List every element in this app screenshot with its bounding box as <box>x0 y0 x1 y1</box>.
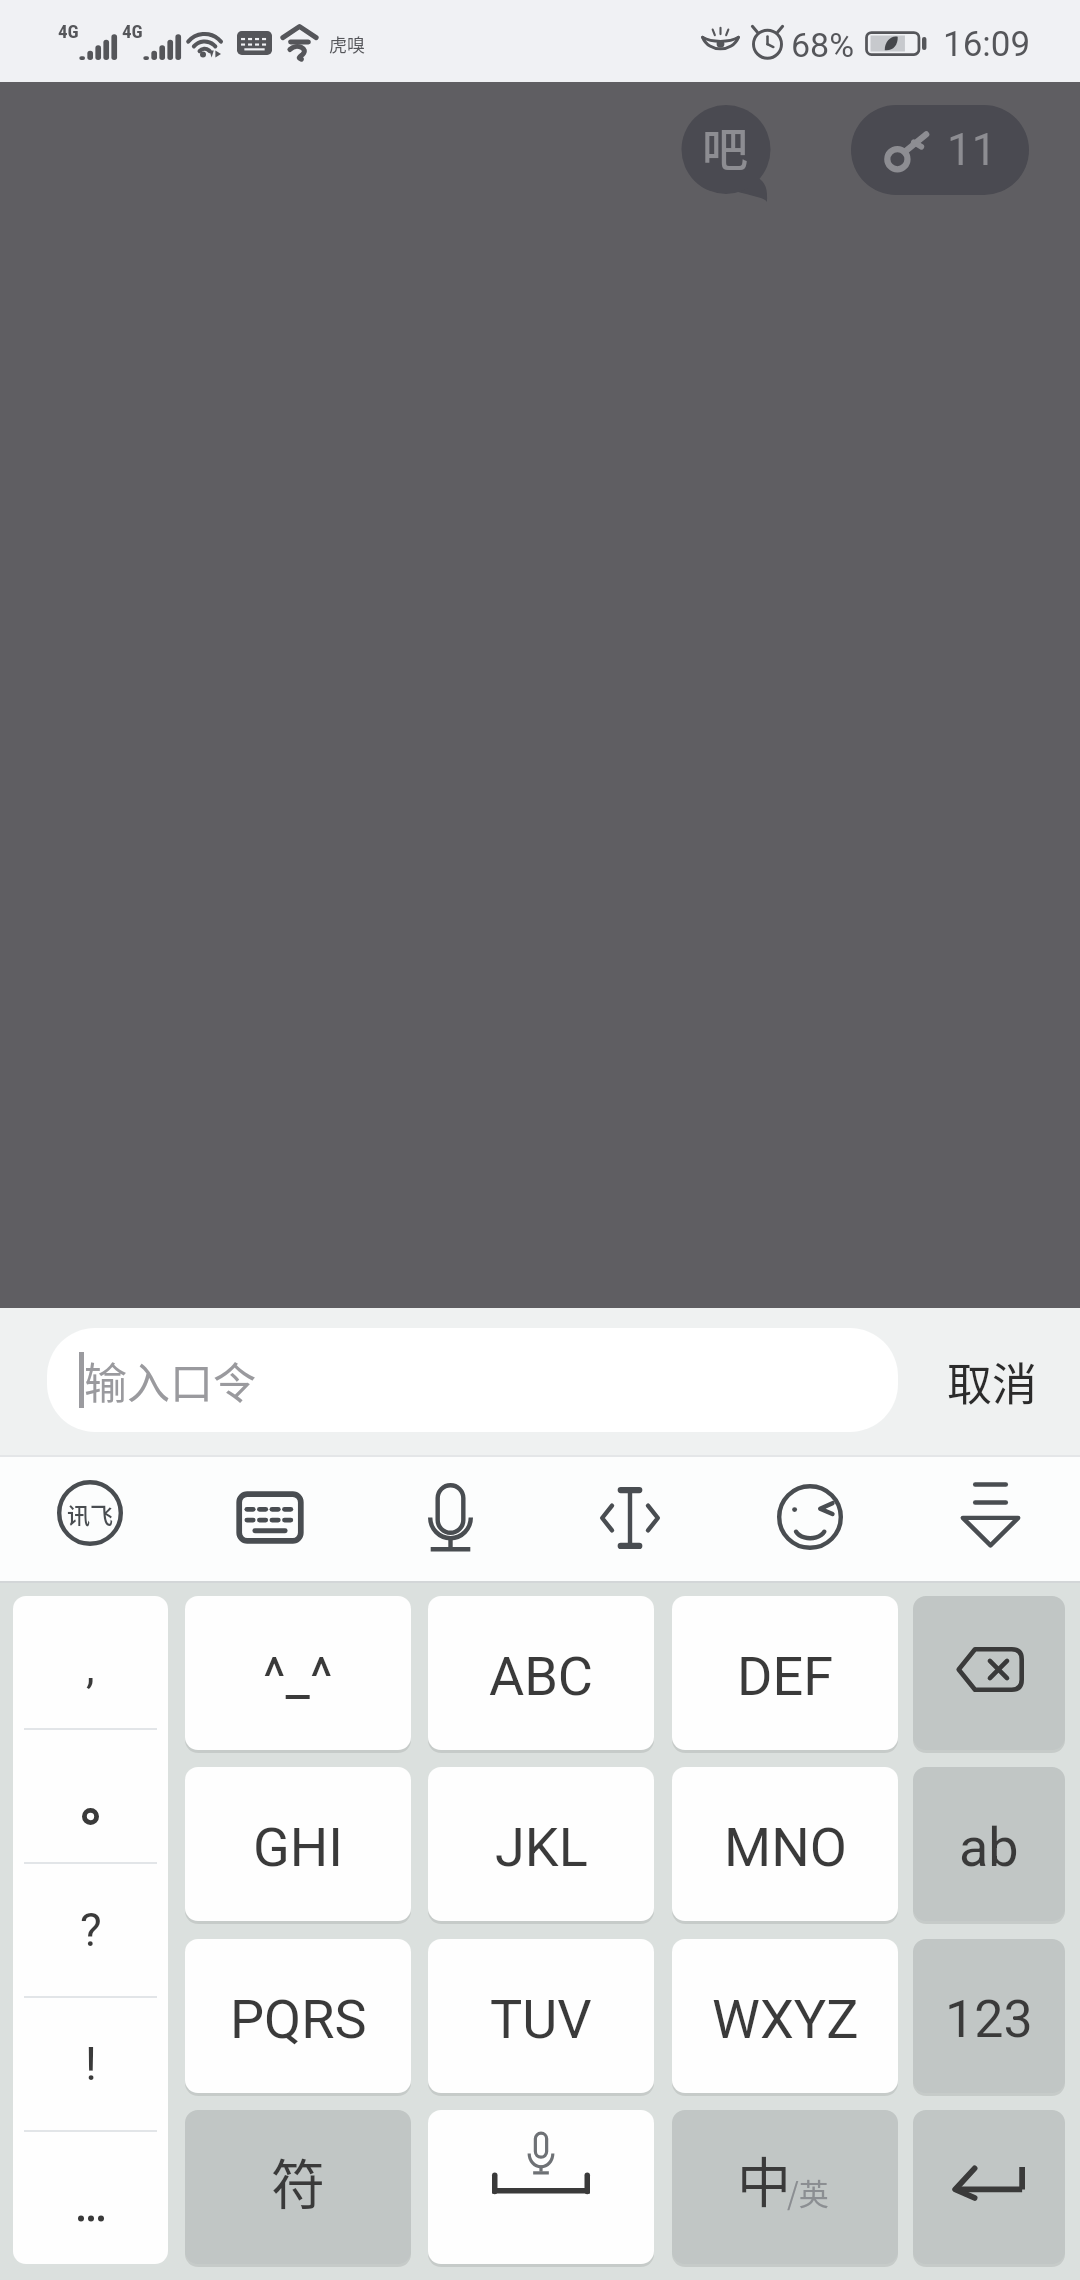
staticText: 11 <box>947 124 997 176</box>
staticText: TUV <box>490 1988 592 2051</box>
staticText: 4G <box>122 20 143 42</box>
button[interactable]: Backspace <box>913 1596 1065 1750</box>
button[interactable]: Enter <box>913 2110 1065 2264</box>
staticText: GHI <box>253 1816 343 1879</box>
staticText: 123 <box>945 1989 1033 2050</box>
button[interactable]: ABC <box>428 1596 654 1750</box>
staticText: 虎嗅 <box>329 31 365 57</box>
button[interactable]: 取消 <box>930 1308 1054 1455</box>
button[interactable]: 吧 <box>676 103 776 213</box>
button[interactable]: exclamation mark <box>13 1998 168 2130</box>
staticText: ab <box>959 1816 1019 1879</box>
staticText: WXYZ <box>712 1988 859 2051</box>
staticText: PQRS <box>230 1988 367 2051</box>
button[interactable]: Voice input <box>360 1455 540 1583</box>
button[interactable]: Hide keyboard <box>900 1455 1080 1583</box>
staticText: , <box>86 1642 95 1694</box>
staticText: DEF <box>737 1645 833 1708</box>
staticText: JKL <box>495 1816 588 1879</box>
button[interactable]: TUV <box>428 1939 654 2093</box>
button[interactable]: 输入口令 <box>47 1328 898 1432</box>
button[interactable]: WXYZ <box>672 1939 898 2093</box>
staticText: 讯飞 <box>67 1497 113 1530</box>
button[interactable]: comma <box>13 1596 168 1728</box>
staticText: 68% <box>791 25 855 65</box>
button[interactable]: period <box>13 1730 168 1862</box>
staticText: ^_^ <box>263 1645 333 1708</box>
staticText: MNO <box>724 1816 847 1879</box>
button[interactable]: JKL <box>428 1767 654 1921</box>
button[interactable]: question mark <box>13 1864 168 1996</box>
staticText: 输入口令 <box>84 1349 256 1411</box>
button[interactable]: iFlytek <box>0 1455 180 1583</box>
button[interactable]: Move cursor <box>540 1455 720 1583</box>
button[interactable]: PQRS <box>185 1939 411 2093</box>
button[interactable]: Space <box>428 2110 654 2264</box>
staticText: 中 <box>737 2140 791 2218</box>
staticText: 吧 <box>702 113 748 180</box>
staticText: ! <box>85 2037 97 2091</box>
button[interactable]: MNO <box>672 1767 898 1921</box>
button[interactable]: Keyboard layout <box>180 1455 360 1583</box>
staticText: 16:09 <box>943 24 1031 65</box>
staticText: 符 <box>271 2142 325 2220</box>
button[interactable]: GHI <box>185 1767 411 1921</box>
staticText: ABC <box>489 1645 594 1708</box>
button[interactable]: ^_^ <box>185 1596 411 1750</box>
button[interactable]: Emoji <box>720 1455 900 1583</box>
staticText: 取消 <box>947 1349 1038 1414</box>
button[interactable]: 11 <box>851 105 1029 195</box>
button[interactable]: ab <box>913 1767 1065 1921</box>
button[interactable]: DEF <box>672 1596 898 1750</box>
button[interactable]: 符 <box>185 2110 411 2264</box>
button[interactable]: 中 <box>672 2110 898 2264</box>
button[interactable]: 123 <box>913 1939 1065 2093</box>
staticText: 4G <box>58 20 79 42</box>
button[interactable]: more <box>13 2132 168 2264</box>
staticText: ? <box>80 1903 102 1957</box>
staticText: /英 <box>787 2170 829 2213</box>
